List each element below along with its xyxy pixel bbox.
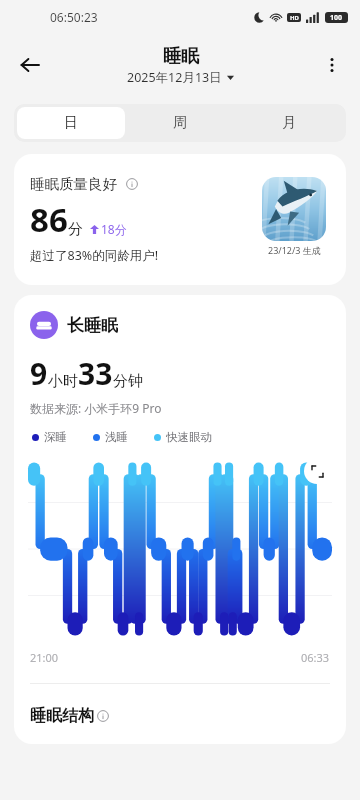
- staticText: HD: [290, 14, 299, 22]
- staticText: 超过了83%的同龄用户!: [30, 247, 159, 264]
- staticText: 分: [68, 220, 83, 239]
- button[interactable]: 2025年12月13日: [125, 69, 236, 86]
- staticText: 9: [30, 353, 48, 394]
- staticText: 21:00: [30, 650, 59, 665]
- button[interactable]: 长睡眠: [30, 311, 118, 339]
- button[interactable]: 日: [17, 107, 125, 139]
- staticText: 小时: [48, 372, 78, 391]
- staticText: 分钟: [113, 372, 143, 391]
- staticText: 快速眼动: [166, 430, 212, 444]
- button[interactable]: 睡眠结构: [30, 706, 109, 726]
- button[interactable]: 月: [234, 107, 343, 139]
- button[interactable]: 更多选项: [312, 45, 352, 85]
- staticText: 睡眠结构: [30, 706, 94, 726]
- staticText: 2025年12月13日: [127, 69, 222, 86]
- staticText: 33: [78, 353, 113, 394]
- button[interactable]: 全屏查看: [304, 458, 330, 484]
- staticText: 数据来源: 小米手环9 Pro: [30, 400, 162, 416]
- staticText: 睡眠质量良好: [30, 175, 117, 193]
- staticText: 周: [173, 114, 187, 132]
- staticText: 23/12/3 生成: [268, 244, 321, 256]
- staticText: 日: [64, 114, 78, 132]
- button[interactable]: 睡眠徽章 鲨鱼: [258, 173, 330, 267]
- staticText: 浅睡: [105, 430, 128, 444]
- staticText: 100: [330, 13, 343, 23]
- staticText: 月: [282, 114, 296, 132]
- staticText: 06:50:23: [50, 9, 98, 25]
- staticText: 18分: [101, 221, 127, 237]
- button[interactable]: 返回: [8, 43, 52, 87]
- staticText: 长睡眠: [67, 315, 118, 336]
- staticText: 06:33: [301, 650, 330, 665]
- staticText: 睡眠: [163, 45, 199, 68]
- button[interactable]: 周: [125, 107, 234, 139]
- button[interactable]: 睡眠质量良好: [14, 154, 346, 285]
- staticText: 86: [30, 197, 68, 242]
- staticText: 深睡: [44, 430, 67, 444]
